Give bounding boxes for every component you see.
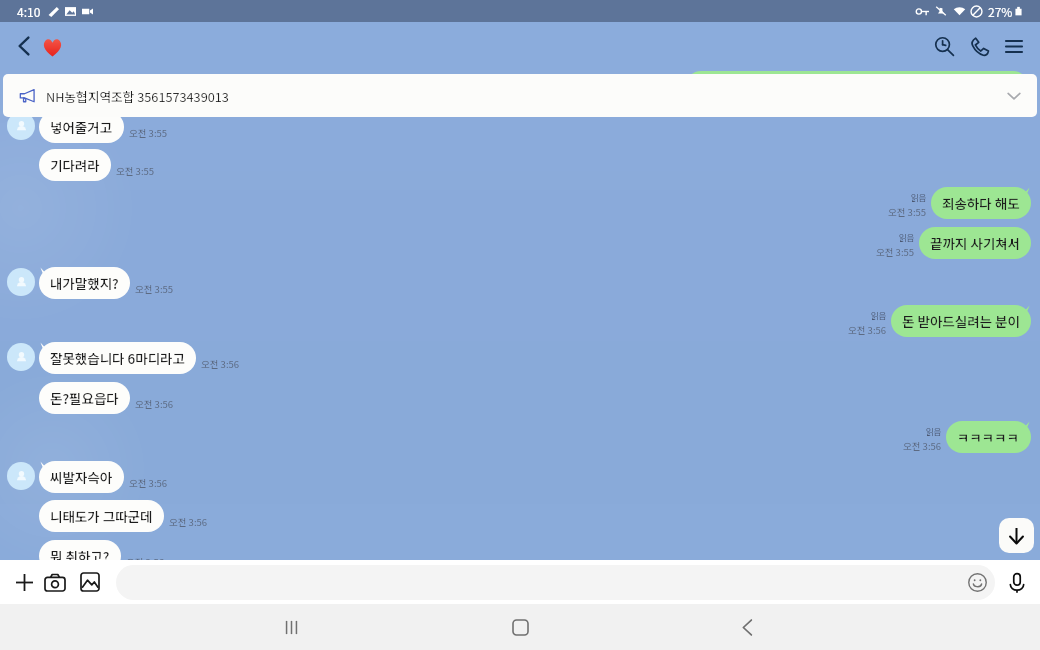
button[interactable]: Call [959,22,999,70]
staticText: 오전 3:56 [201,357,240,371]
button[interactable]: 끝까지 사기쳐서 [919,227,1031,259]
button[interactable]: 돈?필요읍다 [39,382,130,414]
staticText: NH농협지역조합 3561573439013 [46,87,229,105]
staticText: ㅋㅋㅋㅋㅋ [957,427,1020,447]
staticText: 오전 3:55 [129,126,168,140]
button[interactable]: Profile [7,343,35,371]
button[interactable]: Add [6,560,42,604]
staticText: 니태도가 그따군데 [50,506,153,526]
staticText: 오전 3:55 [135,282,174,296]
button[interactable]: Back [4,22,44,70]
staticText: 읽음 [911,191,927,203]
staticText: 읽음 [899,231,915,243]
staticText: 씨발자슥아 [50,467,113,487]
button[interactable]: 니태도가 그따군데 [39,500,164,532]
button[interactable]: Profile [7,112,35,140]
staticText: 오전 3:55 [888,205,927,219]
staticText: 4:10 [17,3,41,20]
staticText: 오전 3:55 [116,164,155,178]
button[interactable]: Profile [7,268,35,296]
staticText: 잘못했습니다 6마디라고 [50,348,185,368]
staticText: 넣어줄거고 [50,117,113,137]
button[interactable]: 잘못했습니다 6마디라고 [39,342,196,374]
button[interactable]: 넣어줄거고 [39,111,124,143]
staticText: 오전 3:55 [876,245,915,259]
button[interactable]: Profile [7,462,35,490]
button[interactable]: Scroll to bottom [999,518,1034,553]
button[interactable]: Home [496,604,544,650]
button[interactable]: Camera [37,560,73,604]
button[interactable]: ㅋㅋㅋㅋㅋ [946,421,1031,453]
staticText: 오전 3:56 [126,555,165,569]
staticText: 읽음 [926,425,942,437]
staticText: 내가말했지? [50,273,119,293]
staticText: 뭐 취하고? [50,546,110,566]
staticText: 읽음 [871,309,887,321]
staticText: 오전 3:56 [135,397,174,411]
staticText: 오전 3:56 [903,439,942,453]
button[interactable] [116,565,995,600]
staticText: 돈?필요읍다 [50,388,119,408]
staticText: 끝까지 사기쳐서 [930,233,1020,253]
button[interactable]: Recents [267,604,315,650]
button[interactable]: NH농협지역조합 3561573439013 [3,74,1037,117]
button[interactable]: 씨발자슥아 [39,461,124,493]
button[interactable]: Voice message [999,565,1034,600]
button[interactable]: Emoji [960,565,995,600]
staticText: 27% [988,3,1013,20]
button[interactable]: 뭐 취하고? [39,540,121,572]
button[interactable]: Gallery [72,560,108,604]
button[interactable]: 기다려라 [39,149,111,181]
staticText: 오전 3:56 [129,476,168,490]
staticText: 돈 받아드실려는 분이 [902,311,1020,331]
staticText: 기다려라 [50,155,100,175]
staticText: 오전 3:56 [848,323,887,337]
button[interactable]: 죄송하다 해도 [931,187,1031,219]
button[interactable]: Menu [994,22,1034,70]
button[interactable]: 돈 받아드실려는 분이 [891,305,1031,337]
staticText: 오전 3:56 [169,515,208,529]
staticText: 죄송하다 해도 [942,193,1020,213]
button[interactable]: Back [723,604,771,650]
button[interactable]: Search [924,22,964,70]
button[interactable]: 내가말했지? [39,267,130,299]
